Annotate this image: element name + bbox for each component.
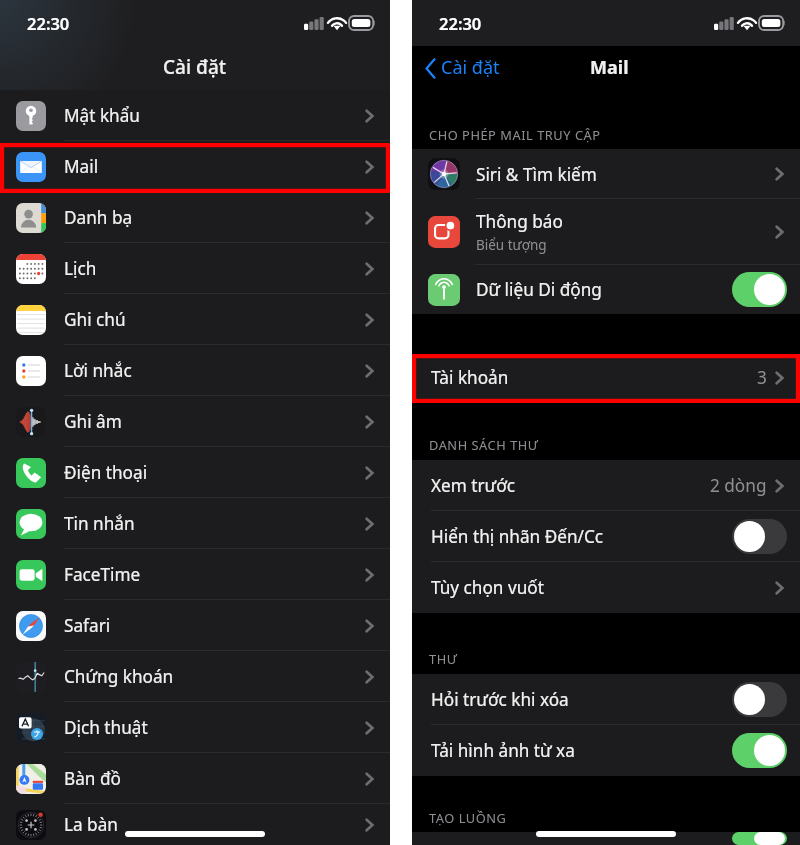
- staticText: Tải hình ảnh từ xa: [431, 739, 575, 762]
- staticText: La bàn: [64, 813, 118, 836]
- button[interactable]: Điện thoại: [0, 447, 390, 498]
- button[interactable]: Bàn đồ: [0, 753, 390, 804]
- staticText: THƯ: [429, 650, 458, 667]
- staticText: Điện thoại: [64, 461, 148, 484]
- staticText: Cài đặt: [441, 55, 500, 80]
- button[interactable]: Xem trước: [412, 460, 800, 511]
- staticText: Tin nhắn: [64, 512, 135, 535]
- button[interactable]: Toggle on: [732, 832, 787, 845]
- staticText: Biểu tượng: [476, 236, 547, 254]
- button[interactable]: FaceTime: [0, 549, 390, 600]
- button[interactable]: Safari: [0, 600, 390, 651]
- button[interactable]: Ghi âm: [0, 396, 390, 447]
- button[interactable]: Toggle off: [732, 682, 787, 717]
- button[interactable]: Hỏi trước khi xóa: [412, 674, 800, 725]
- staticText: 3: [757, 366, 767, 389]
- button[interactable]: Siri & Tìm kiếm: [412, 149, 800, 199]
- staticText: Xem trước: [431, 474, 516, 497]
- staticText: Dịch thuật: [64, 716, 148, 739]
- staticText: 22:30: [27, 12, 70, 34]
- staticText: Tùy chọn vuốt: [431, 576, 544, 599]
- button[interactable]: Chứng khoán: [0, 651, 390, 702]
- staticText: 2 dòng: [710, 474, 767, 497]
- staticText: Lịch: [64, 257, 97, 280]
- button[interactable]: Hiển thị nhãn Đến/Cc: [412, 511, 800, 562]
- staticText: Tài khoản: [431, 366, 509, 389]
- staticText: Chứng khoán: [64, 665, 174, 688]
- button[interactable]: Mail: [0, 141, 390, 192]
- button[interactable]: Toggle off: [732, 519, 787, 554]
- staticText: Bàn đồ: [64, 767, 121, 790]
- button[interactable]: Dữ liệu Di động: [412, 265, 800, 314]
- button[interactable]: Ghi chú: [0, 294, 390, 345]
- button[interactable]: Thông báo: [412, 199, 800, 265]
- staticText: Thông báo: [476, 210, 563, 233]
- button[interactable]: Tải hình ảnh từ xa: [412, 725, 800, 776]
- staticText: Cài đặt: [163, 54, 227, 80]
- staticText: DANH SÁCH THƯ: [429, 436, 539, 453]
- button[interactable]: Back: [412, 46, 508, 90]
- button[interactable]: Toggle on: [732, 272, 787, 307]
- button[interactable]: La bàn: [0, 804, 390, 845]
- staticText: Hiển thị nhãn Đến/Cc: [431, 525, 604, 548]
- staticText: Hỏi trước khi xóa: [431, 688, 569, 711]
- button[interactable]: Toggle on: [412, 832, 800, 845]
- button[interactable]: Lời nhắc: [0, 345, 390, 396]
- button[interactable]: Tin nhắn: [0, 498, 390, 549]
- staticText: Safari: [64, 614, 111, 637]
- button[interactable]: Tùy chọn vuốt: [412, 562, 800, 613]
- staticText: Ghi âm: [64, 410, 122, 433]
- staticText: Dữ liệu Di động: [476, 278, 602, 301]
- staticText: Mật khẩu: [64, 104, 140, 127]
- staticText: Mail: [590, 55, 629, 80]
- staticText: Lời nhắc: [64, 359, 132, 382]
- button[interactable]: Dịch thuật: [0, 702, 390, 753]
- button[interactable]: Mật khẩu: [0, 90, 390, 141]
- button[interactable]: Danh bạ: [0, 192, 390, 243]
- staticText: 22:30: [439, 12, 482, 34]
- staticText: TẠO LUỒNG: [429, 809, 507, 826]
- button[interactable]: Tài khoản: [412, 355, 800, 400]
- button[interactable]: Toggle on: [732, 733, 787, 768]
- staticText: Siri & Tìm kiếm: [476, 163, 597, 186]
- staticText: Danh bạ: [64, 206, 133, 229]
- staticText: Ghi chú: [64, 308, 126, 331]
- other: Back: [425, 58, 436, 79]
- staticText: Mail: [64, 155, 99, 178]
- staticText: FaceTime: [64, 563, 141, 586]
- button[interactable]: Lịch: [0, 243, 390, 294]
- staticText: CHO PHÉP MAIL TRUY CẬP: [429, 126, 601, 143]
